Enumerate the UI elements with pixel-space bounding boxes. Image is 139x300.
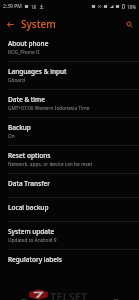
staticText: 18% <box>127 4 136 10</box>
staticText: On <box>8 133 15 140</box>
button[interactable]: Reset options <box>0 146 139 173</box>
staticText: Local backup <box>8 203 49 212</box>
staticText: TELSET <box>50 289 88 300</box>
staticText: System update <box>8 227 55 236</box>
button[interactable]: Regulatory labels <box>0 250 139 273</box>
staticText: Backup <box>8 123 31 132</box>
staticText: 18 <box>31 4 37 10</box>
staticText: Date & time <box>8 95 45 104</box>
staticText: Languages & input <box>8 67 67 76</box>
staticText: GMT+07:00 Western Indonesia Time <box>8 105 90 112</box>
staticText: Reset options <box>8 151 51 160</box>
staticText: Network, apps, or device can be reset <box>8 161 93 168</box>
staticText: System <box>21 17 56 31</box>
staticText: 2:39 PM <box>3 3 22 10</box>
button[interactable]: System update <box>0 222 139 249</box>
staticText: Data Transfer <box>8 179 51 188</box>
button[interactable]: Local backup <box>0 198 139 221</box>
staticText: About phone <box>8 39 49 48</box>
staticText: Updated to Android 9 <box>8 237 57 244</box>
button[interactable]: Back <box>3 17 17 31</box>
button[interactable]: Languages & input <box>0 62 139 89</box>
button[interactable]: Data Transfer <box>0 174 139 197</box>
button[interactable]: Date & time <box>0 90 139 117</box>
staticText: Gboard <box>8 77 25 84</box>
button[interactable]: Backup <box>0 118 139 145</box>
button[interactable]: Search <box>122 17 136 31</box>
staticText: ROG_Phone II <box>8 49 40 56</box>
staticText: Regulatory labels <box>8 255 62 264</box>
button[interactable]: About phone <box>0 34 139 61</box>
